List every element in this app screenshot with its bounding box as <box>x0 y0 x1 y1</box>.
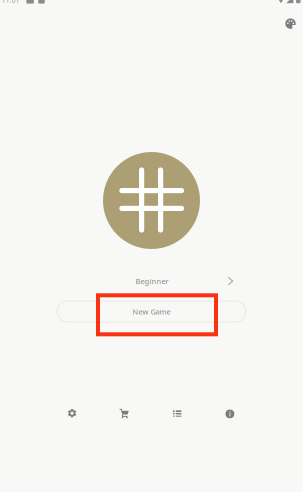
staticText: 11:01 <box>2 0 20 4</box>
button[interactable]: Theme <box>274 8 303 40</box>
button[interactable]: Beginner <box>57 270 246 292</box>
button[interactable]: Settings <box>49 397 95 429</box>
button[interactable]: About <box>207 398 253 430</box>
button[interactable]: New Game <box>57 301 246 322</box>
staticText: Beginner <box>135 276 168 286</box>
staticText: New Game <box>132 306 170 317</box>
button[interactable]: Scores <box>154 398 200 430</box>
button[interactable]: Store <box>101 398 147 430</box>
